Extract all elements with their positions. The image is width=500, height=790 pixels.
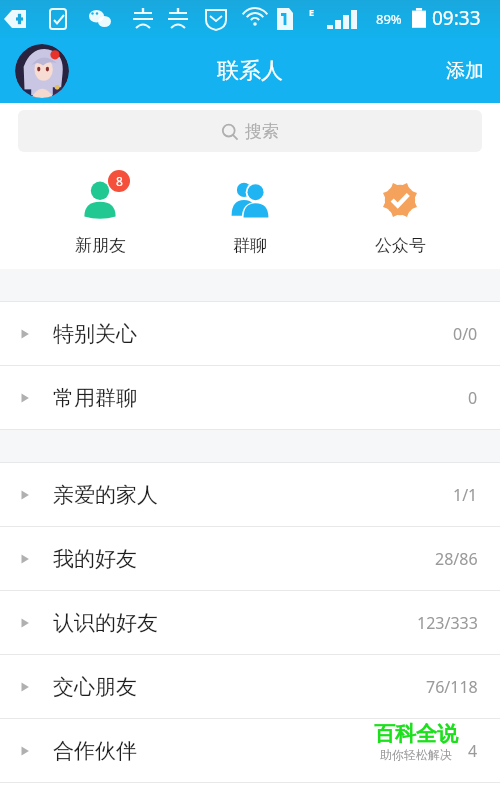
staticText: 公众号 (375, 235, 426, 256)
staticText: 亲爱的家人 (53, 482, 158, 508)
staticText: 1/1 (453, 484, 478, 506)
staticText: 0 (468, 387, 478, 409)
staticText: 联系人 (217, 57, 283, 85)
button[interactable]: 合作伙伴 (0, 719, 500, 782)
staticText: 123/333 (417, 612, 478, 634)
staticText: 添加 (446, 59, 484, 83)
button[interactable]: 交心朋友 (0, 655, 500, 718)
staticText: 0/0 (453, 323, 478, 345)
button[interactable]: 添加 (430, 49, 500, 93)
staticText: 群聊 (233, 235, 267, 256)
staticText: 合作伙伴 (53, 738, 137, 764)
button[interactable]: 认识的好友 (0, 591, 500, 654)
staticText: 28/86 (435, 548, 478, 570)
staticText: E (309, 6, 315, 18)
button[interactable]: 群聊 (200, 168, 300, 260)
button[interactable]: 我的好友 (0, 527, 500, 590)
staticText: 76/118 (426, 676, 478, 698)
staticText: 89% (376, 10, 402, 28)
button[interactable]: 常用群聊 (0, 366, 500, 429)
staticText: 常用群聊 (53, 385, 137, 411)
button[interactable]: 搜索 (18, 110, 482, 152)
staticText: 09:33 (432, 5, 481, 31)
staticText: 特别关心 (53, 321, 137, 347)
button[interactable]: 8 (50, 168, 150, 260)
staticText: 搜索 (245, 121, 279, 142)
button[interactable]: 特别关心 (0, 302, 500, 365)
staticText: 新朋友 (75, 235, 126, 256)
staticText: 8 (116, 173, 123, 189)
staticText: 百科全说 (374, 721, 458, 747)
staticText: 4 (468, 740, 478, 762)
staticText: 助你轻松解决 (380, 747, 452, 762)
staticText: 交心朋友 (53, 674, 137, 700)
button[interactable]: Profile (15, 44, 69, 98)
button[interactable]: 亲爱的家人 (0, 463, 500, 526)
button[interactable]: 公众号 (350, 168, 450, 260)
staticText: 认识的好友 (53, 610, 158, 636)
staticText: 我的好友 (53, 546, 137, 572)
